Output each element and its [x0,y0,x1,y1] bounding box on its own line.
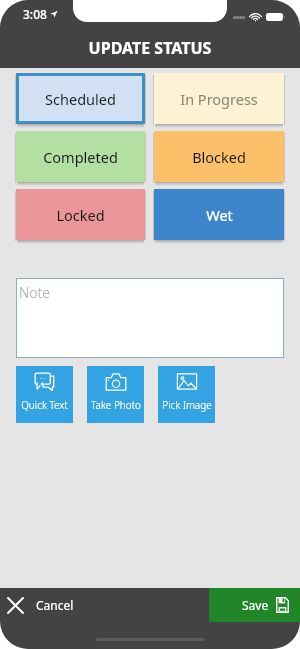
staticText: Save [242,597,269,613]
staticText: Blocked [192,147,246,167]
staticText: Take Photo [91,398,141,412]
other: Save [276,597,289,613]
button[interactable]: In Progress [154,73,284,124]
staticText: Scheduled [45,89,116,109]
staticText: Cancel [36,597,74,613]
staticText: Locked [56,205,105,225]
button[interactable]: Wet [154,189,284,240]
button[interactable]: Completed [16,131,145,182]
button[interactable]: Note [16,278,284,358]
staticText: Completed [43,147,118,167]
button[interactable]: Quick Text [16,366,73,423]
staticText: Quick Text [21,398,68,412]
button[interactable]: Scheduled [19,76,142,121]
staticText: Pick Image [162,398,212,412]
other: Cancel [7,597,24,614]
staticText: UPDATE STATUS [0,37,300,59]
staticText: Note [19,283,50,302]
button[interactable]: Cancel [0,588,209,622]
staticText: Wet [206,205,233,225]
button[interactable]: Take Photo [87,366,144,423]
staticText: In Progress [180,89,258,109]
staticText: 3:08 [23,6,47,22]
button[interactable]: Pick Image [158,366,215,423]
button[interactable]: Locked [16,189,145,240]
button[interactable]: Blocked [154,131,284,182]
button[interactable]: Save [209,588,300,622]
